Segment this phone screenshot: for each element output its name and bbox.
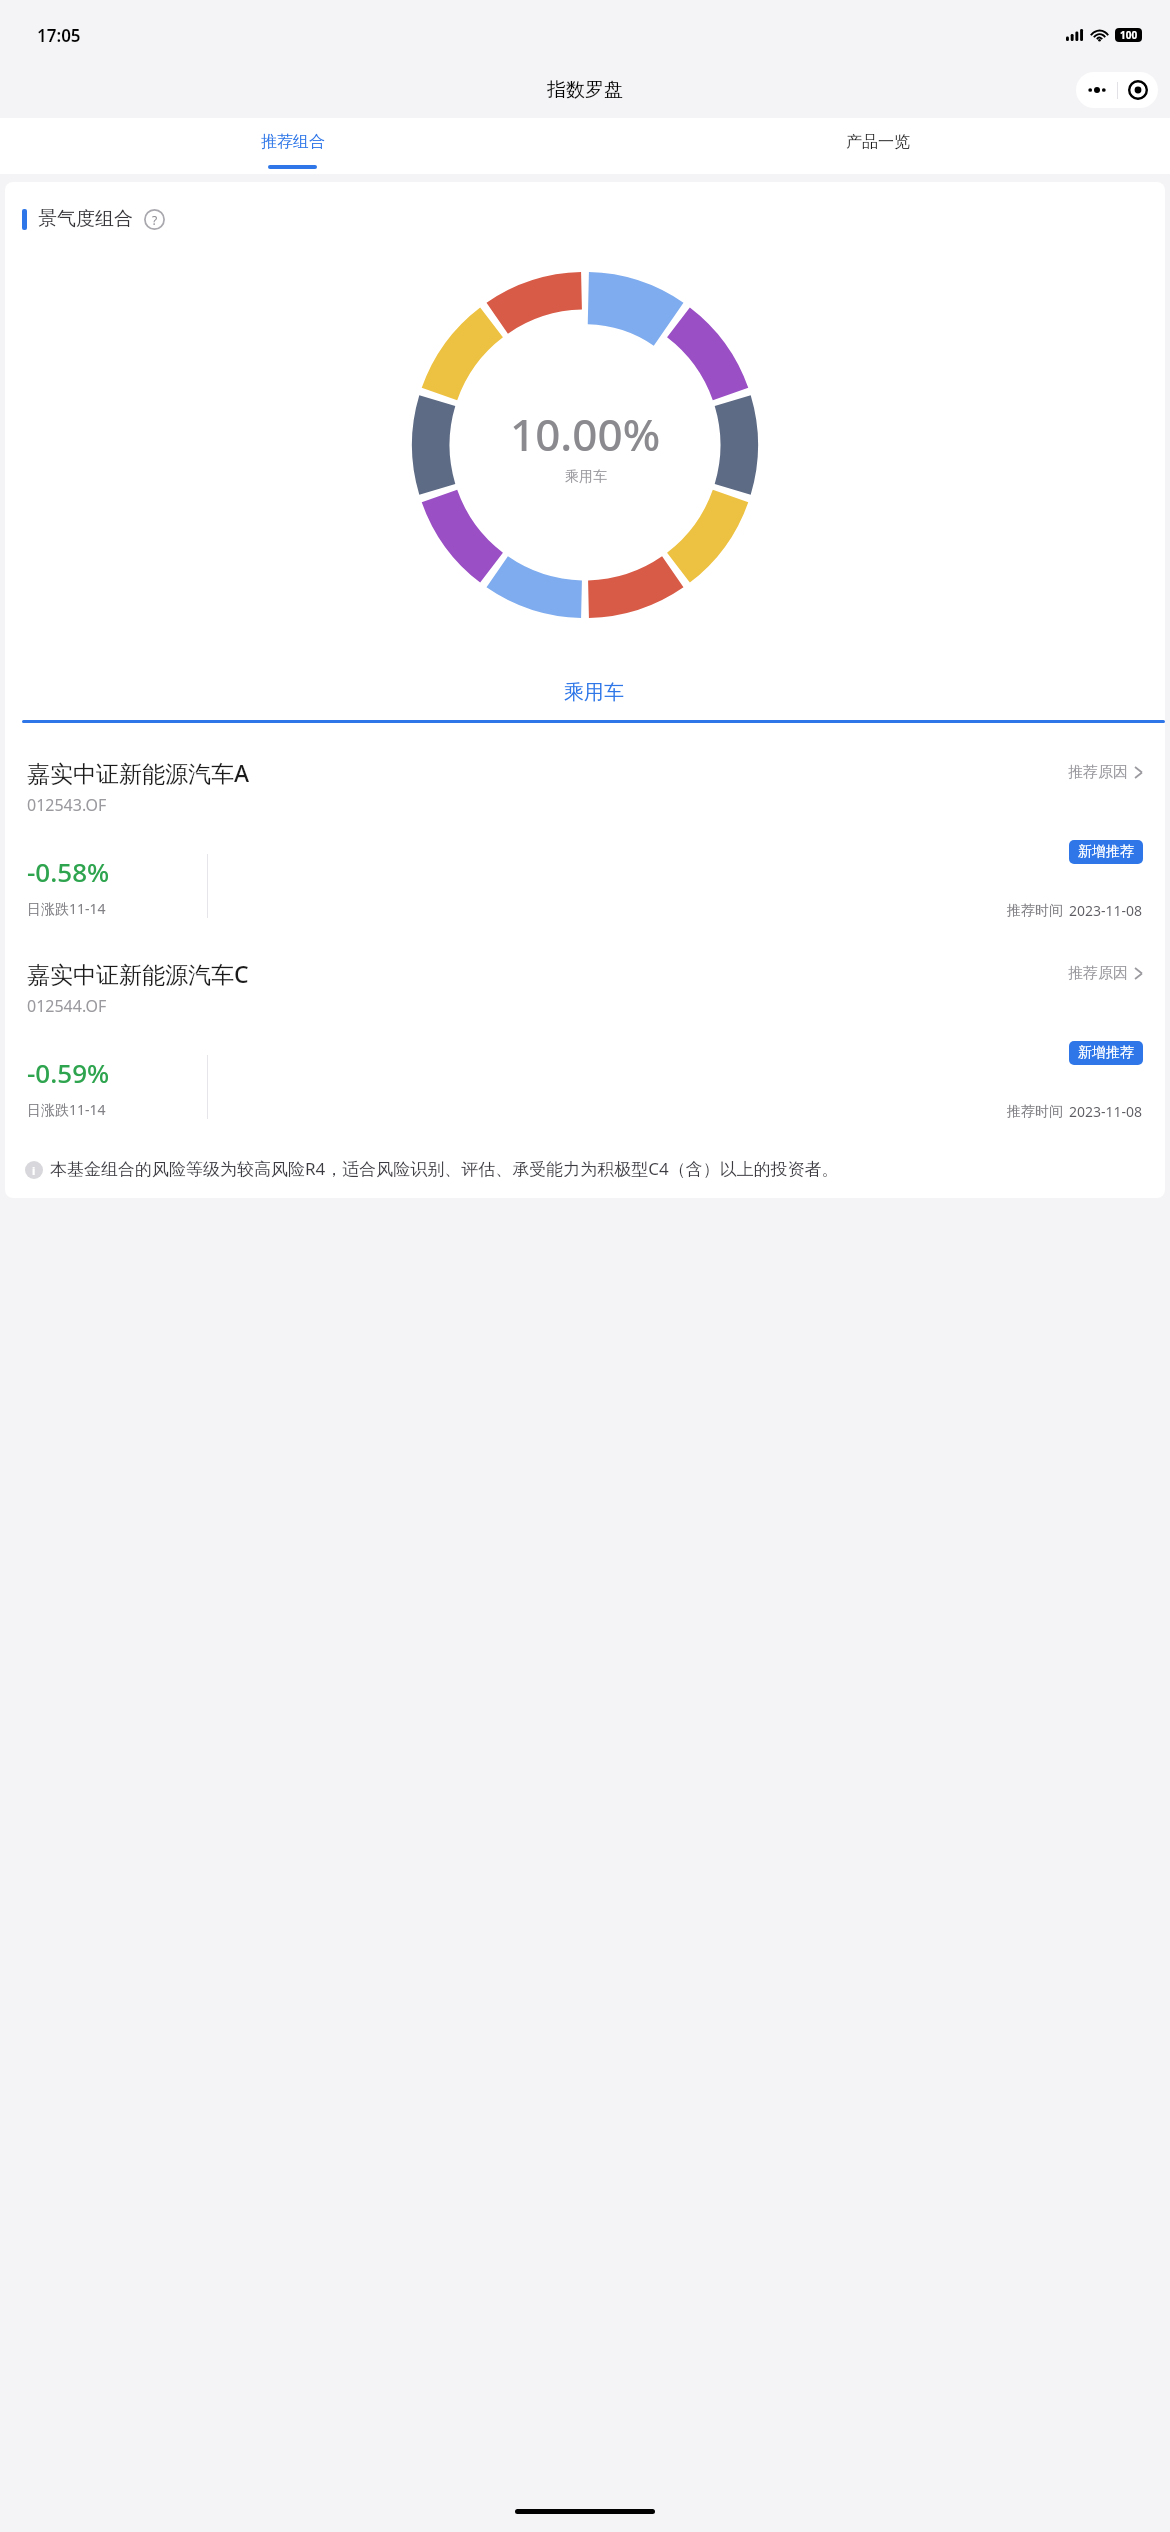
staticText: 日涨跌11-14 <box>27 1100 106 1119</box>
staticText: 景气度组合 <box>38 207 133 231</box>
staticText: -0.59% <box>27 1055 110 1090</box>
button[interactable]: More options <box>1077 72 1117 108</box>
staticText: 新增推荐 <box>1078 1044 1134 1062</box>
button[interactable]: 乘用车 <box>22 659 1165 733</box>
staticText: 推荐时间 <box>1007 1103 1063 1121</box>
button[interactable]: 产品一览 <box>585 118 1170 174</box>
staticText: 推荐组合 <box>261 132 325 152</box>
staticText: i <box>32 1163 36 1178</box>
staticText: 新增推荐 <box>1078 843 1134 861</box>
staticText: 乘用车 <box>565 468 607 486</box>
staticText: 推荐时间 <box>1007 902 1063 920</box>
button[interactable]: 嘉实中证新能源汽车C <box>5 934 1165 1135</box>
button[interactable]: Target <box>1118 72 1158 108</box>
staticText: 012544.OF <box>27 995 107 1017</box>
staticText: 推荐原因 <box>1068 964 1128 983</box>
staticText: 2023-11-08 <box>1069 1102 1143 1121</box>
staticText: 嘉实中证新能源汽车A <box>27 757 1068 788</box>
staticText: 100 <box>1120 28 1138 42</box>
staticText: 10.00% <box>510 404 661 464</box>
button[interactable]: 推荐组合 <box>0 118 585 174</box>
staticText: 产品一览 <box>846 132 910 152</box>
button[interactable]: Help <box>144 209 165 230</box>
staticText: 17:05 <box>37 24 81 47</box>
staticText: 推荐原因 <box>1068 763 1128 782</box>
staticText: 乘用车 <box>564 680 624 705</box>
staticText: 012543.OF <box>27 794 107 816</box>
staticText: 嘉实中证新能源汽车C <box>27 958 1068 989</box>
staticText: 日涨跌11-14 <box>27 899 106 918</box>
staticText: -0.58% <box>27 854 110 889</box>
staticText: 2023-11-08 <box>1069 901 1143 920</box>
staticText: ? <box>152 212 158 228</box>
staticText: 本基金组合的风险等级为较高风险R4，适合风险识别、评估、承受能力为积极型C4（含… <box>50 1157 839 1180</box>
button[interactable]: 嘉实中证新能源汽车A <box>5 733 1165 934</box>
staticText: 指数罗盘 <box>547 78 623 102</box>
